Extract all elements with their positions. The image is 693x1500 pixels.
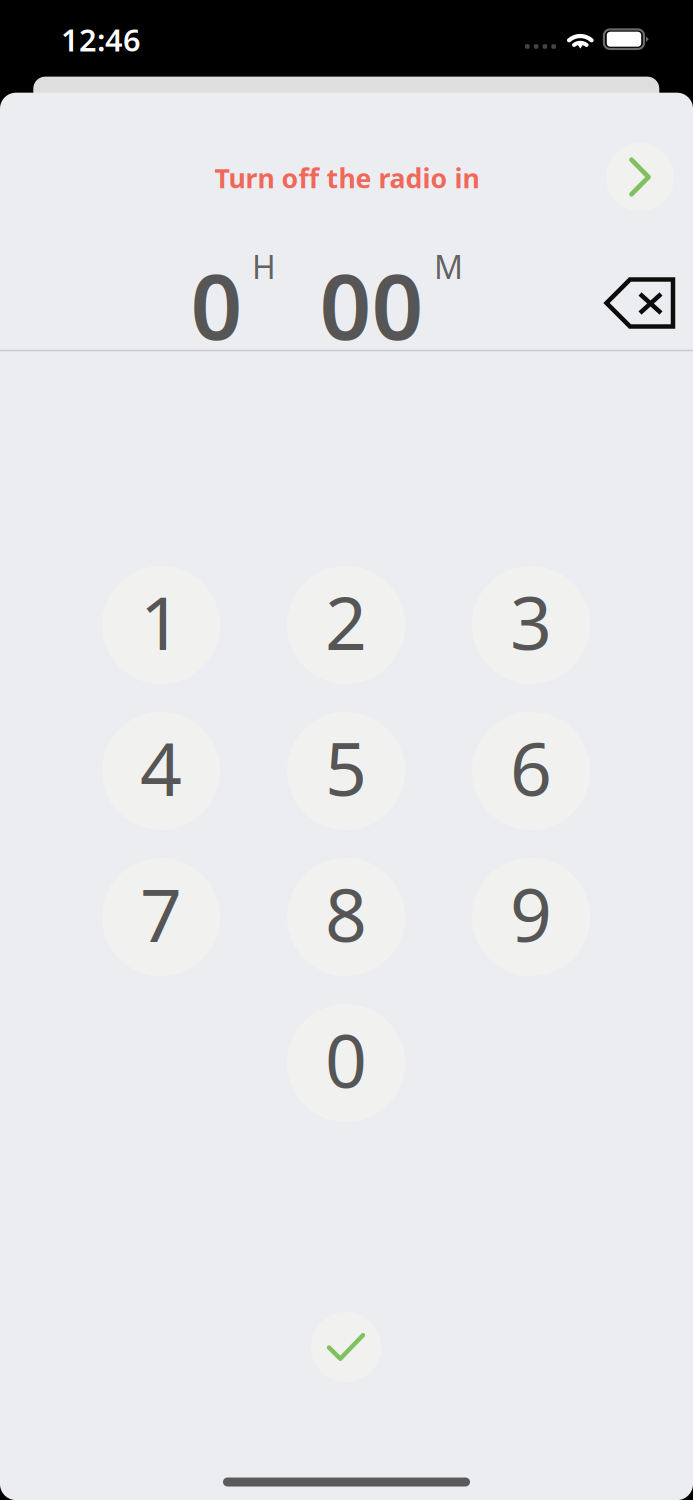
button[interactable]: 3 — [472, 566, 590, 684]
button[interactable]: 4 — [102, 712, 220, 830]
button[interactable]: 8 — [287, 858, 405, 976]
staticText: 00 — [319, 244, 423, 365]
staticText: 5 — [325, 719, 367, 816]
button[interactable]: 9 — [472, 858, 590, 976]
button[interactable]: Confirm — [311, 1312, 381, 1382]
button[interactable]: Continue — [606, 143, 674, 211]
button[interactable]: 6 — [472, 712, 590, 830]
button[interactable]: 1 — [102, 566, 220, 684]
staticText: 12:46 — [61, 19, 141, 60]
staticText: 0 — [325, 1011, 367, 1108]
staticText: 4 — [140, 719, 182, 816]
button[interactable]: Delete — [604, 277, 676, 329]
staticText: 1 — [140, 573, 182, 670]
staticText: 2 — [325, 573, 367, 670]
staticText: 3 — [510, 573, 552, 670]
staticText: 6 — [510, 719, 552, 816]
button[interactable]: 7 — [102, 858, 220, 976]
button[interactable]: 5 — [287, 712, 405, 830]
staticText: 7 — [140, 865, 182, 962]
staticText: 0 — [190, 244, 242, 365]
staticText: 8 — [325, 865, 367, 962]
button[interactable]: 2 — [287, 566, 405, 684]
staticText: M — [434, 245, 463, 288]
staticText: H — [252, 245, 276, 288]
button[interactable]: 0 — [287, 1004, 405, 1122]
staticText: Turn off the radio in — [214, 160, 479, 196]
staticText: 9 — [510, 865, 552, 962]
